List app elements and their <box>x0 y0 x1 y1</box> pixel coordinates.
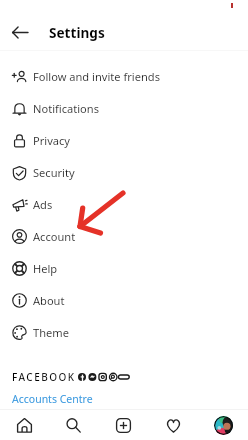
staticText: Help <box>33 261 58 276</box>
staticText: Theme <box>33 325 69 340</box>
staticText: Settings <box>49 23 105 42</box>
button[interactable]: Account <box>0 220 248 252</box>
staticText: FACEBOOK <box>12 370 76 384</box>
button[interactable]: About <box>0 284 248 316</box>
button[interactable]: Security <box>0 156 248 188</box>
button[interactable]: Help <box>0 252 248 284</box>
staticText: Accounts Centre <box>12 392 93 406</box>
staticText: Ads <box>33 197 53 212</box>
button[interactable]: Home <box>0 410 49 440</box>
button[interactable]: Create <box>98 410 148 440</box>
button[interactable]: Profile <box>198 410 248 440</box>
button[interactable]: Notifications <box>0 92 248 124</box>
button[interactable]: Theme <box>0 316 248 348</box>
button[interactable]: Privacy <box>0 124 248 156</box>
staticText: About <box>33 293 65 308</box>
staticText: Privacy <box>33 133 70 148</box>
button[interactable]: Search <box>49 410 98 440</box>
button[interactable]: Activity <box>148 410 198 440</box>
button[interactable]: Back <box>3 15 37 49</box>
staticText: Account <box>33 229 76 244</box>
staticText: Notifications <box>33 101 99 116</box>
button[interactable]: Ads <box>0 188 248 220</box>
staticText: Follow and invite friends <box>33 69 160 84</box>
button[interactable]: Follow and invite friends <box>0 60 248 92</box>
staticText: Security <box>33 165 75 180</box>
